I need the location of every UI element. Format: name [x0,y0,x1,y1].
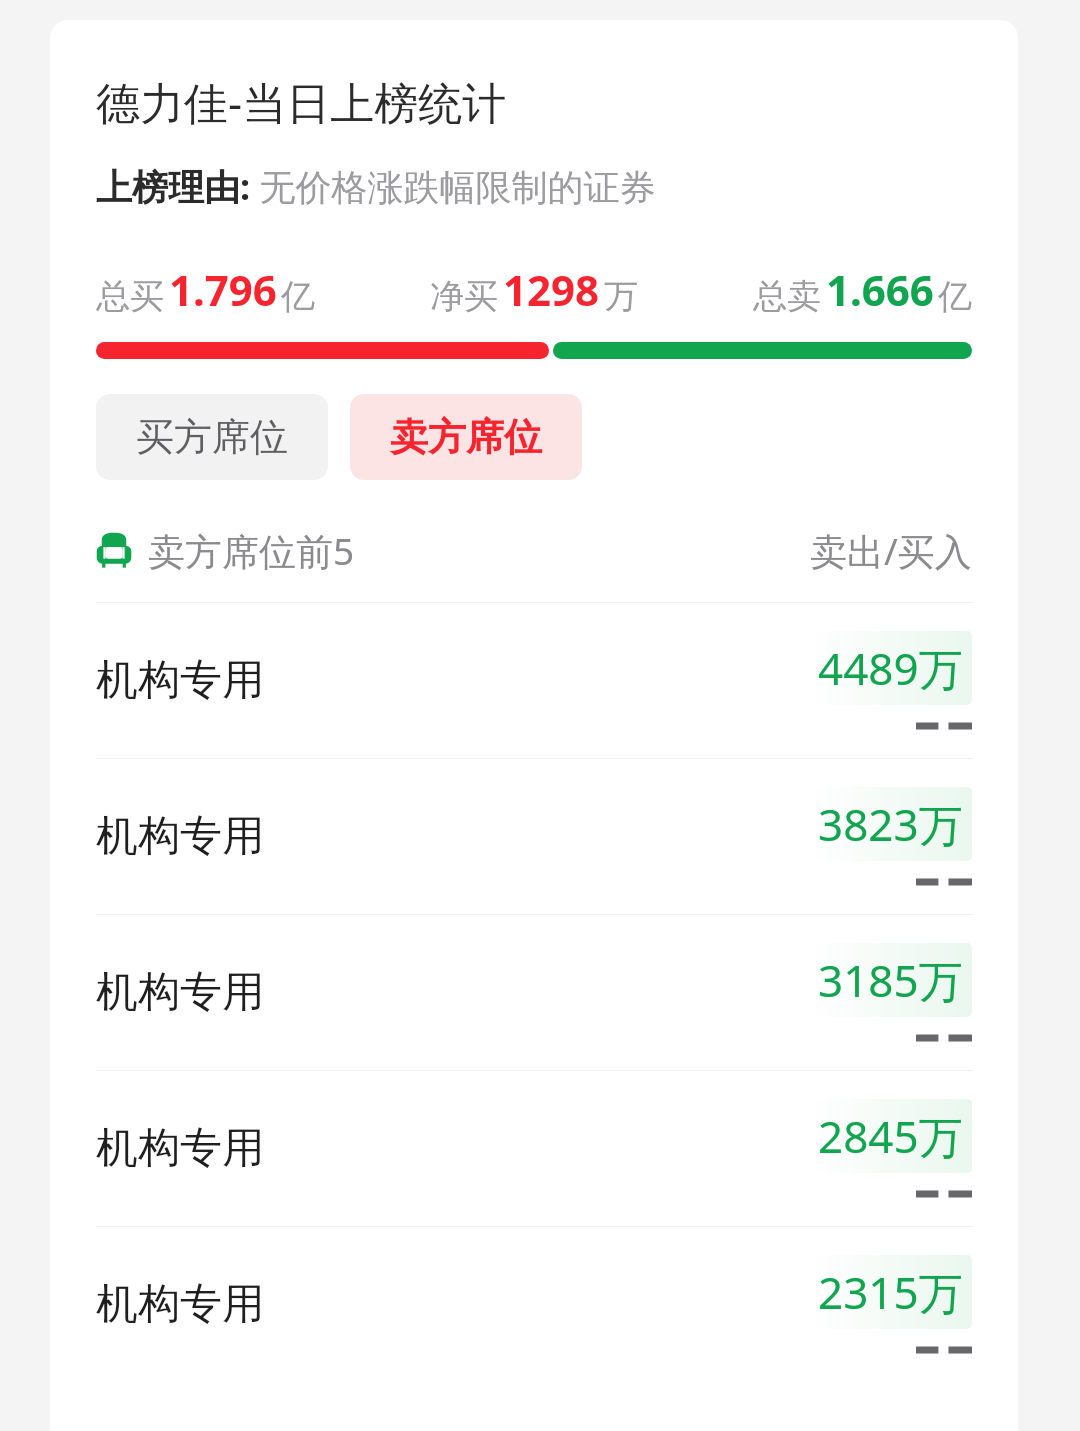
button[interactable]: 机构专用 [96,602,972,758]
button[interactable]: 机构专用 [96,1226,972,1382]
staticText: 3185万 [818,950,963,1010]
staticText: 2315万 [818,1262,963,1322]
staticText: 2845万 [818,1106,963,1166]
staticText: 总卖 [753,275,821,318]
staticText: 机构专用 [96,1278,264,1331]
staticText: 德力佳-当日上榜统计 [96,72,507,132]
staticText: 机构专用 [96,966,264,1019]
staticText: 1298 [503,261,600,318]
staticText: 万 [604,275,638,318]
staticText: 亿 [938,275,972,318]
staticText: 机构专用 [96,654,264,707]
button[interactable]: 买方席位 [96,394,328,480]
staticText: 1.796 [169,261,277,318]
button[interactable]: 机构专用 [96,1070,972,1226]
staticText: 3823万 [818,794,963,854]
staticText: 上榜理由: 无价格涨跌幅限制的证券 [96,162,656,211]
staticText: 卖方席位前5 [148,525,355,576]
staticText: 净买 [430,275,498,318]
staticText: 机构专用 [96,1122,264,1175]
button[interactable]: 机构专用 [96,758,972,914]
staticText: 4489万 [818,638,963,698]
other: 席位 [96,532,132,568]
staticText: 卖方席位 [390,413,542,461]
staticText: 机构专用 [96,810,264,863]
button[interactable]: 卖方席位 [350,394,582,480]
staticText: 总买 [96,275,164,318]
staticText: 亿 [281,275,315,318]
staticText: 买方席位 [136,413,288,461]
button[interactable]: 机构专用 [96,914,972,1070]
staticText: 卖出/买入 [810,525,972,576]
staticText: 1.666 [826,261,934,318]
